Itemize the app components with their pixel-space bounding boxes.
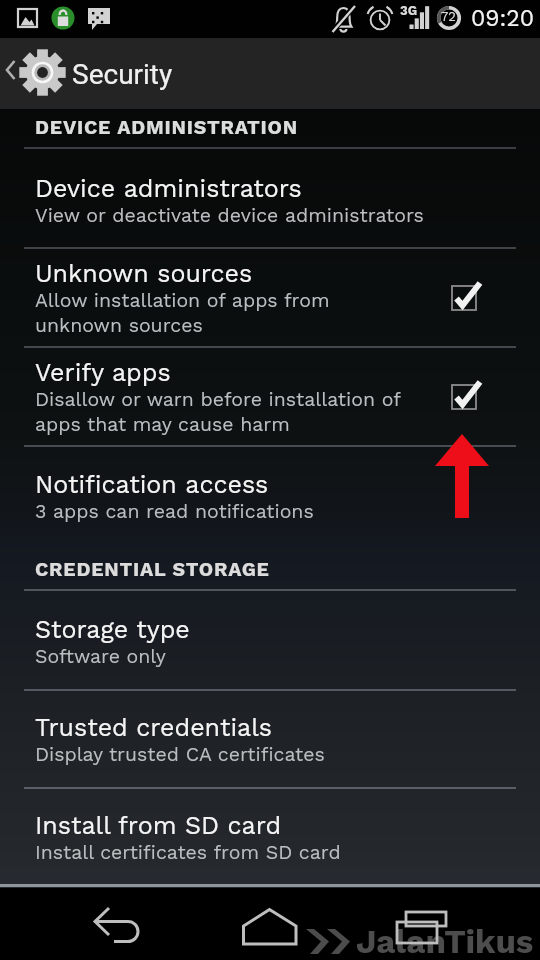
button[interactable]: Device administrators [0,149,540,247]
button[interactable]: Checkbox, checked [452,281,486,315]
button[interactable]: Install from SD card [0,789,540,884]
staticText: 72 [441,9,456,24]
staticText: Allow installation of apps from unknown … [35,289,330,337]
button[interactable]: Unknown sources [0,249,540,346]
staticText: 09:20 [471,5,535,32]
staticText: View or deactivate device administrators [35,204,424,227]
button[interactable]: Trusted credentials [0,691,540,787]
staticText: Install from SD card [35,811,282,840]
button[interactable]: Verify apps [0,348,540,445]
button[interactable]: Back [90,902,150,944]
staticText: JalanTikus [356,922,534,960]
staticText: Software only [35,645,166,668]
staticText: Install certificates from SD card [35,841,341,864]
button[interactable]: Notification access [0,447,540,545]
staticText: Security [72,58,173,91]
button[interactable]: Home [241,901,301,943]
staticText: 3G [400,3,418,18]
staticText: Notification access [35,470,269,499]
button[interactable]: Storage type [0,591,540,689]
button[interactable]: Checkbox, checked [452,380,486,414]
button[interactable]: Recent apps [394,900,454,942]
staticText: Display trusted CA certificates [35,743,325,766]
staticText: DEVICE ADMINISTRATION [35,116,299,139]
staticText: CREDENTIAL STORAGE [35,558,270,581]
staticText: 3 apps can read notifications [35,500,314,523]
staticText: Storage type [35,615,190,644]
button[interactable]: Navigate up [0,38,540,109]
staticText: Verify apps [35,358,171,387]
staticText: Trusted credentials [35,713,273,742]
staticText: Device administrators [35,174,302,203]
staticText: Unknown sources [35,259,253,288]
staticText: Disallow or warn before installation of … [35,388,401,436]
